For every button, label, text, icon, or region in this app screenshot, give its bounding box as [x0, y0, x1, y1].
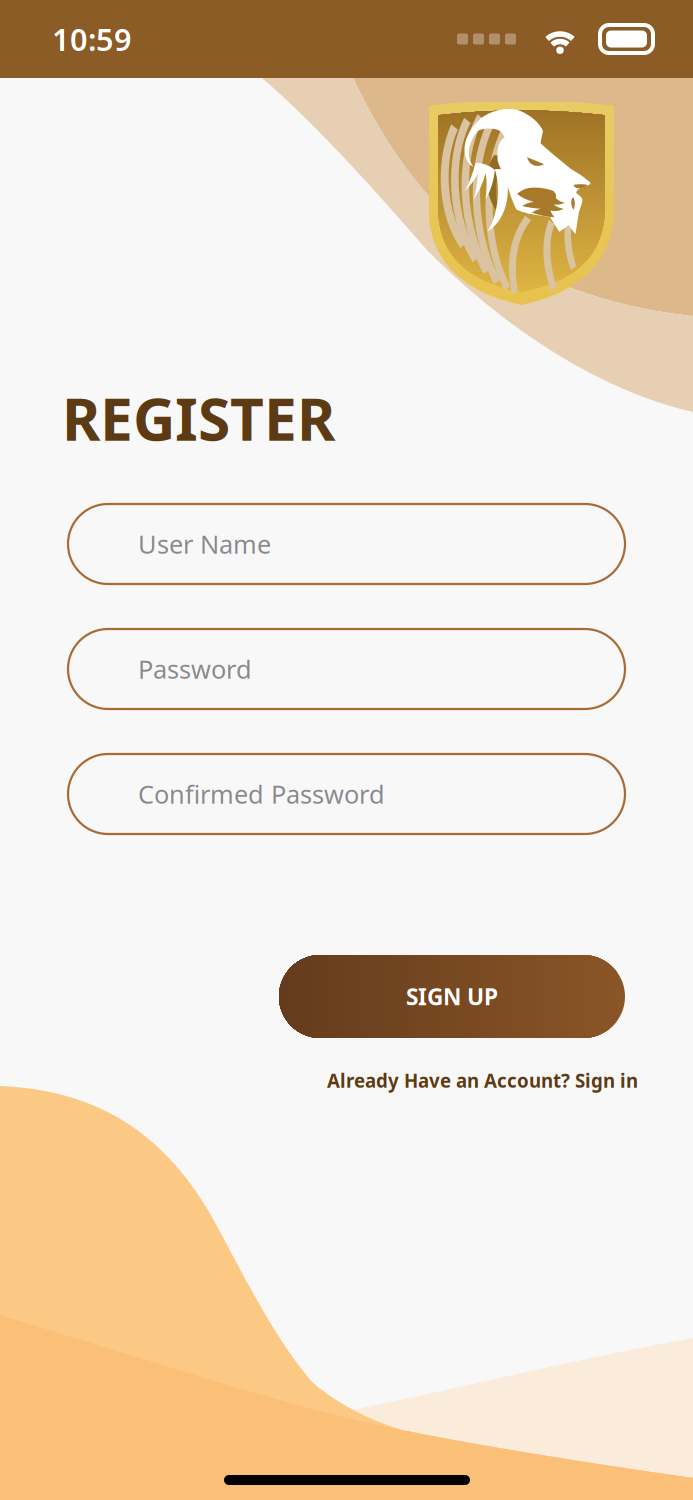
- staticText: Password: [138, 652, 252, 686]
- staticText: Already Have an Account? Sign in: [327, 1068, 638, 1093]
- button[interactable]: Password: [68, 629, 625, 709]
- button[interactable]: SIGN UP: [279, 955, 625, 1038]
- button[interactable]: Confirmed Password: [68, 754, 625, 834]
- staticText: REGISTER: [62, 379, 335, 457]
- staticText: Confirmed Password: [138, 777, 385, 811]
- button[interactable]: Already Have an Account? Sign in: [327, 1068, 638, 1093]
- staticText: 10:59: [52, 19, 132, 59]
- staticText: SIGN UP: [406, 981, 498, 1011]
- button[interactable]: User Name: [68, 504, 625, 584]
- staticText: User Name: [138, 527, 271, 561]
